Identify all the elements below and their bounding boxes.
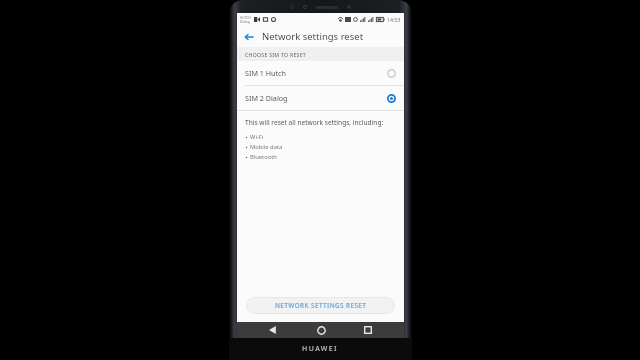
button[interactable]: SIM 2 Dialog [237, 86, 404, 110]
staticText: HUTCH [240, 16, 251, 20]
button[interactable]: Recent apps [358, 322, 378, 338]
staticText: CHOOSE SIM TO RESET [245, 51, 307, 58]
button[interactable]: Back [263, 322, 283, 338]
staticText: Dialog [240, 20, 250, 24]
staticText: Network settings reset [262, 30, 364, 43]
button[interactable]: Home [311, 322, 331, 338]
staticText: HUAWEI [302, 344, 339, 354]
button[interactable]: SIM 1 Hutch [237, 61, 404, 85]
staticText: 14:53 [387, 16, 401, 23]
staticText: SIM 1 Hutch [245, 68, 287, 78]
staticText: Bluetooth [250, 153, 277, 161]
staticText: NETWORK SETTINGS RESET [275, 301, 367, 310]
staticText: This will reset all network settings, in… [245, 118, 384, 127]
button[interactable]: NETWORK SETTINGS RESET [246, 297, 395, 314]
staticText: SIM 2 Dialog [245, 93, 288, 103]
button[interactable]: Navigate up [241, 29, 257, 45]
staticText: Wi-Fi [250, 133, 264, 141]
staticText: Mobile data [250, 143, 283, 151]
